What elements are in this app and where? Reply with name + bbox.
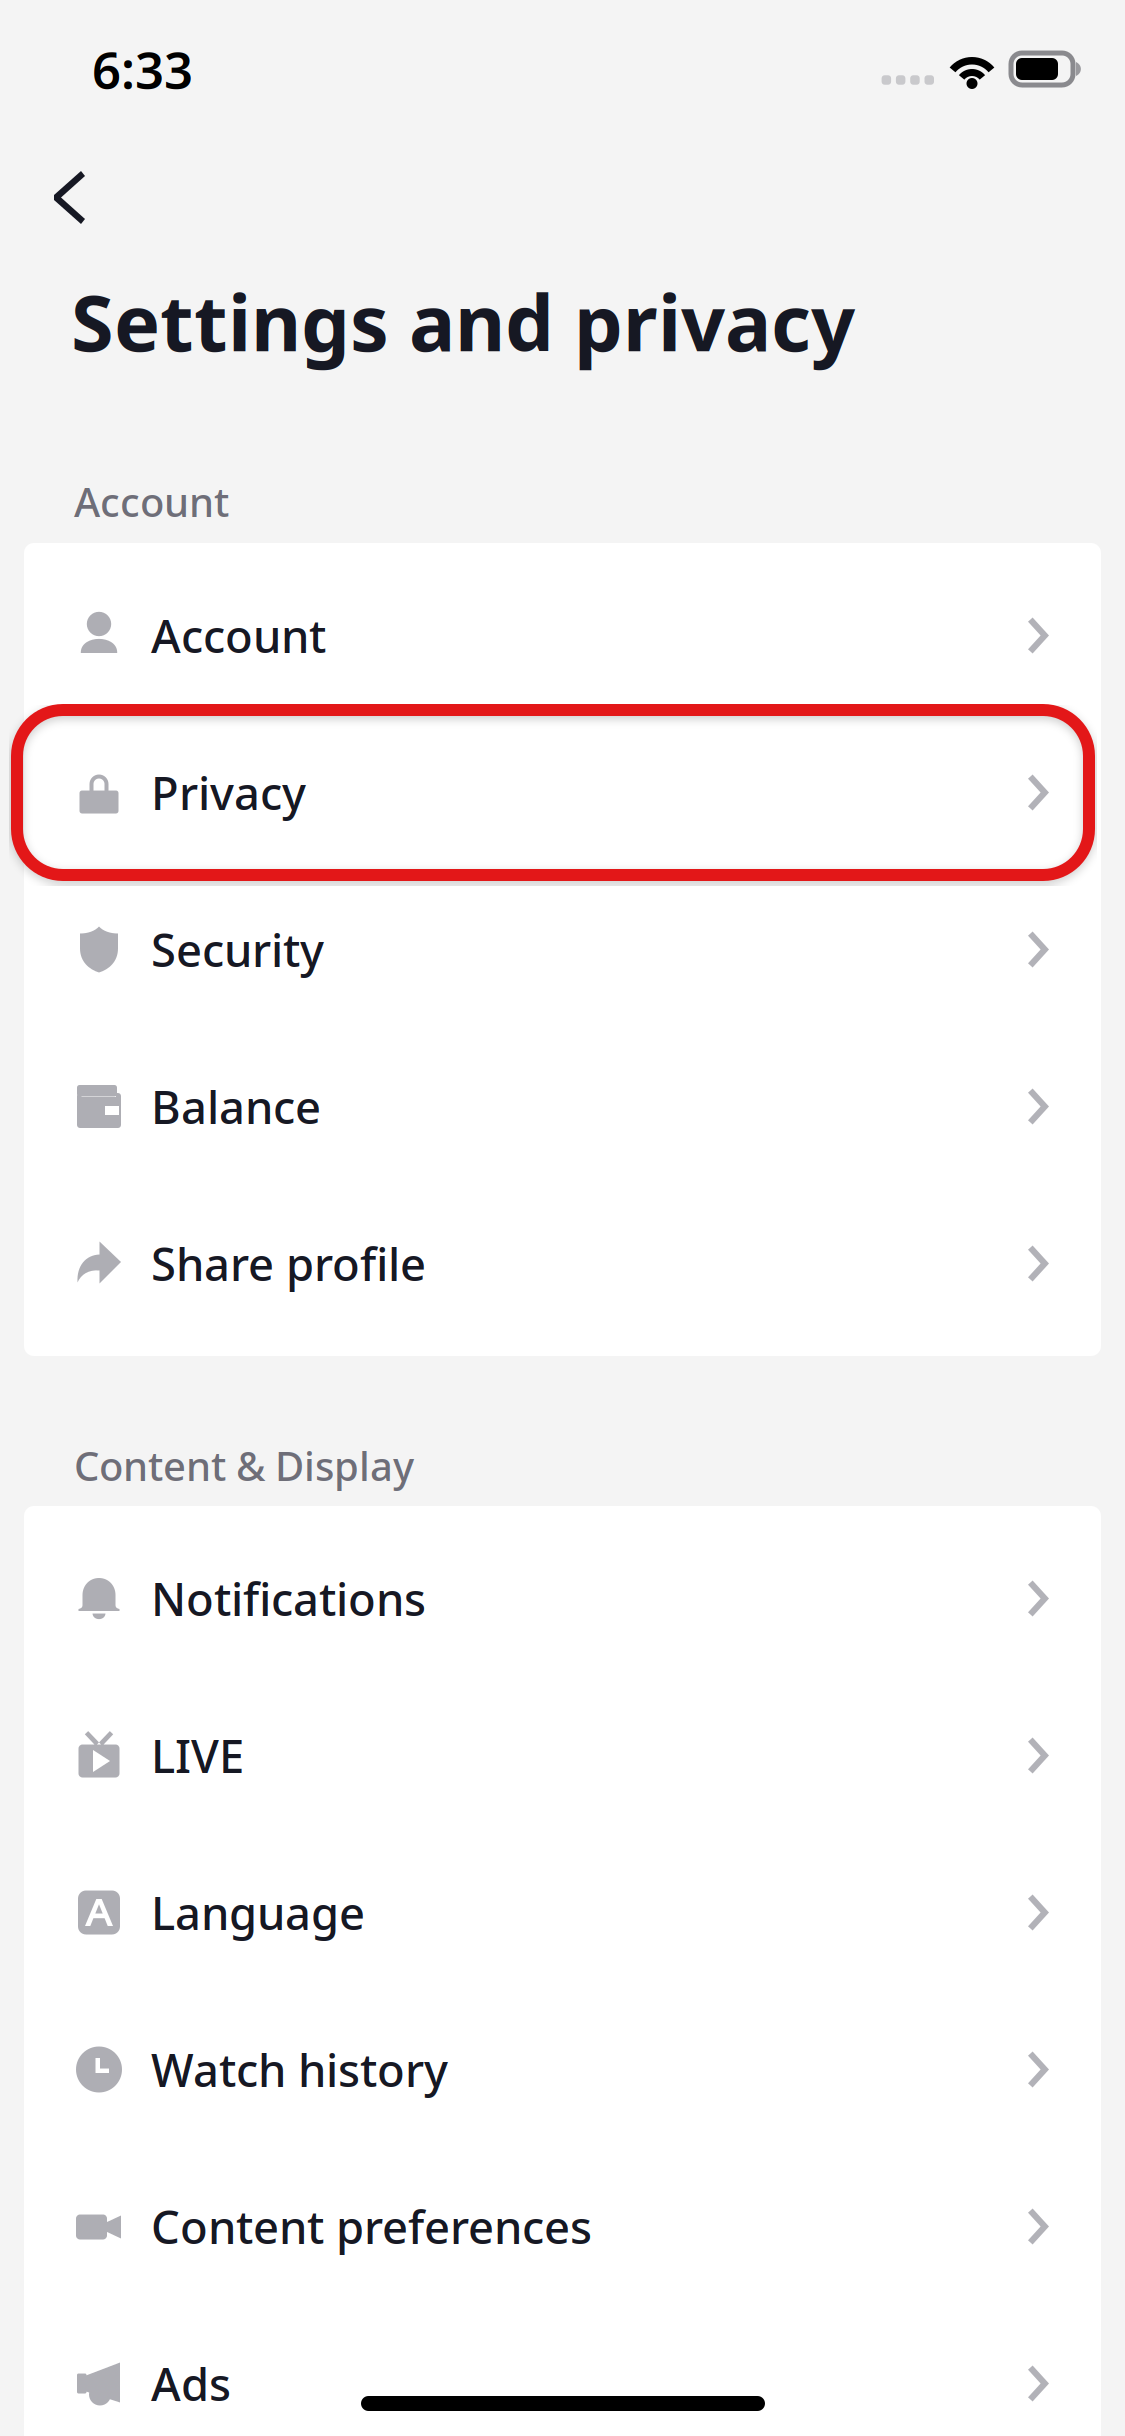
button[interactable]: Notifications [24, 1520, 1101, 1677]
button[interactable]: Account [24, 557, 1101, 714]
button[interactable]: LIVE [24, 1677, 1101, 1834]
staticText: Ads [151, 2353, 231, 2414]
button[interactable]: Language [24, 1834, 1101, 1991]
button[interactable]: Share profile [24, 1185, 1101, 1342]
staticText: Settings and privacy [71, 270, 855, 373]
button[interactable]: Security [24, 871, 1101, 1028]
staticText: Security [151, 919, 324, 980]
staticText: Content preferences [151, 2196, 592, 2257]
staticText: Share profile [151, 1233, 426, 1294]
staticText: Account [74, 475, 229, 528]
button[interactable]: Privacy [24, 714, 1101, 871]
button[interactable]: Ads [24, 2305, 1101, 2436]
staticText: Balance [151, 1076, 321, 1137]
staticText: LIVE [151, 1725, 244, 1786]
button[interactable]: Balance [24, 1028, 1101, 1185]
button[interactable]: Watch history [24, 1991, 1101, 2148]
button[interactable]: Content preferences [24, 2148, 1101, 2305]
staticText: Privacy [151, 762, 306, 823]
staticText: 6:33 [92, 35, 193, 103]
staticText: Notifications [151, 1568, 426, 1629]
staticText: Language [151, 1882, 365, 1943]
staticText: Content & Display [74, 1439, 414, 1492]
staticText: Account [151, 605, 326, 666]
staticText: Watch history [151, 2039, 448, 2100]
button[interactable]: Back [16, 141, 122, 254]
